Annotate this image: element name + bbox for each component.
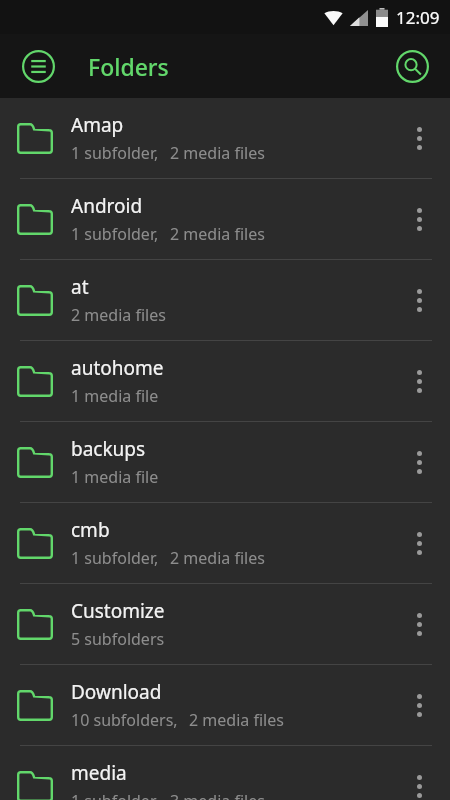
- staticText: backups: [71, 436, 146, 462]
- button[interactable]: More options: [395, 519, 443, 567]
- button[interactable]: autohome: [0, 341, 450, 421]
- button[interactable]: More options: [395, 438, 443, 486]
- button[interactable]: More options: [395, 600, 443, 648]
- button[interactable]: Customize: [0, 584, 450, 664]
- staticText: 1 subfolder,: [71, 547, 159, 569]
- button[interactable]: Open navigation menu: [14, 42, 62, 90]
- staticText: at: [71, 274, 89, 300]
- staticText: 2 media files: [71, 304, 166, 326]
- staticText: Android: [71, 193, 143, 219]
- staticText: Amap: [71, 112, 124, 138]
- staticText: 1 subfolder,: [71, 790, 159, 800]
- staticText: 1 subfolder,: [71, 142, 159, 164]
- staticText: 12:09: [396, 6, 440, 29]
- staticText: Folders: [88, 51, 169, 82]
- staticText: 1 media file: [71, 466, 159, 488]
- button[interactable]: More options: [395, 681, 443, 729]
- button[interactable]: backups: [0, 422, 450, 502]
- button[interactable]: More options: [395, 357, 443, 405]
- button[interactable]: Download: [0, 665, 450, 745]
- staticText: 2 media files: [170, 223, 265, 245]
- button[interactable]: Amap: [0, 98, 450, 178]
- button[interactable]: More options: [395, 276, 443, 324]
- button[interactable]: More options: [395, 195, 443, 243]
- staticText: 1 subfolder,: [71, 223, 159, 245]
- staticText: 1 media file: [71, 385, 159, 407]
- staticText: 5 subfolders: [71, 628, 165, 650]
- button[interactable]: More options: [395, 762, 443, 800]
- staticText: autohome: [71, 355, 164, 381]
- staticText: 10 subfolders,: [71, 709, 178, 731]
- staticText: Customize: [71, 598, 165, 624]
- button[interactable]: media: [0, 746, 450, 800]
- staticText: Download: [71, 679, 162, 705]
- button[interactable]: Android: [0, 179, 450, 259]
- button[interactable]: at: [0, 260, 450, 340]
- button[interactable]: cmb: [0, 503, 450, 583]
- staticText: 3 media files: [170, 790, 265, 800]
- staticText: 2 media files: [170, 142, 265, 164]
- staticText: 2 media files: [170, 547, 265, 569]
- button[interactable]: Search: [388, 42, 436, 90]
- staticText: cmb: [71, 517, 110, 543]
- staticText: media: [71, 760, 127, 786]
- staticText: 2 media files: [189, 709, 284, 731]
- button[interactable]: More options: [395, 114, 443, 162]
